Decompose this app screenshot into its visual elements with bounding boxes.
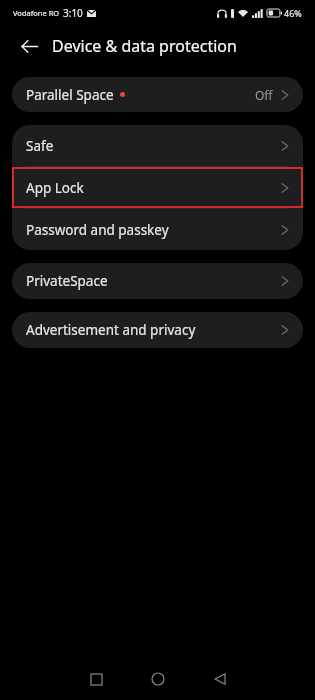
button[interactable]: Advertisement and privacy <box>12 312 303 348</box>
staticText: Device & data protection <box>52 35 237 57</box>
button[interactable]: Home <box>136 658 180 700</box>
staticText: App Lock <box>26 179 84 197</box>
staticText: 3:10 <box>63 6 83 20</box>
button[interactable]: App Lock <box>12 167 303 208</box>
staticText: 46% <box>284 7 302 19</box>
staticText: Off <box>255 87 273 103</box>
button[interactable]: Parallel Space <box>12 77 303 112</box>
staticText: Parallel Space <box>26 86 114 104</box>
button[interactable]: Safe <box>12 125 303 166</box>
staticText: Advertisement and privacy <box>26 321 196 339</box>
button[interactable]: Recent apps <box>74 658 118 700</box>
staticText: Vodafone RO <box>13 8 60 18</box>
button[interactable]: Back <box>198 658 242 700</box>
button[interactable]: PrivateSpace <box>12 263 303 299</box>
button[interactable]: Password and passkey <box>12 209 303 250</box>
staticText: PrivateSpace <box>26 272 108 290</box>
staticText: Safe <box>26 137 54 155</box>
button[interactable]: Back <box>12 29 46 63</box>
staticText: Password and passkey <box>26 221 169 239</box>
